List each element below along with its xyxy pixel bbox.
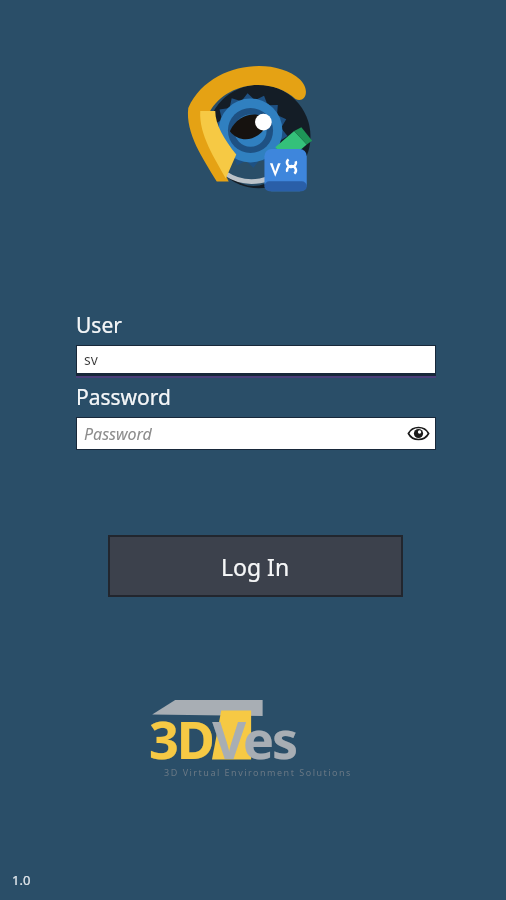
staticText: 1.0 [12,871,31,889]
button[interactable]: Password [77,418,435,449]
staticText: 3D Virtual Environment Solutions [143,766,373,778]
staticText: Password [76,383,171,412]
button[interactable]: Log In [110,537,401,595]
staticText: sv [84,350,98,369]
staticText: Log In [221,551,290,582]
staticText: Password [84,423,402,445]
staticText: 3DVes [149,703,297,773]
button[interactable]: sv [77,346,435,373]
staticText: User [76,311,122,340]
button[interactable]: Show password [402,418,435,449]
